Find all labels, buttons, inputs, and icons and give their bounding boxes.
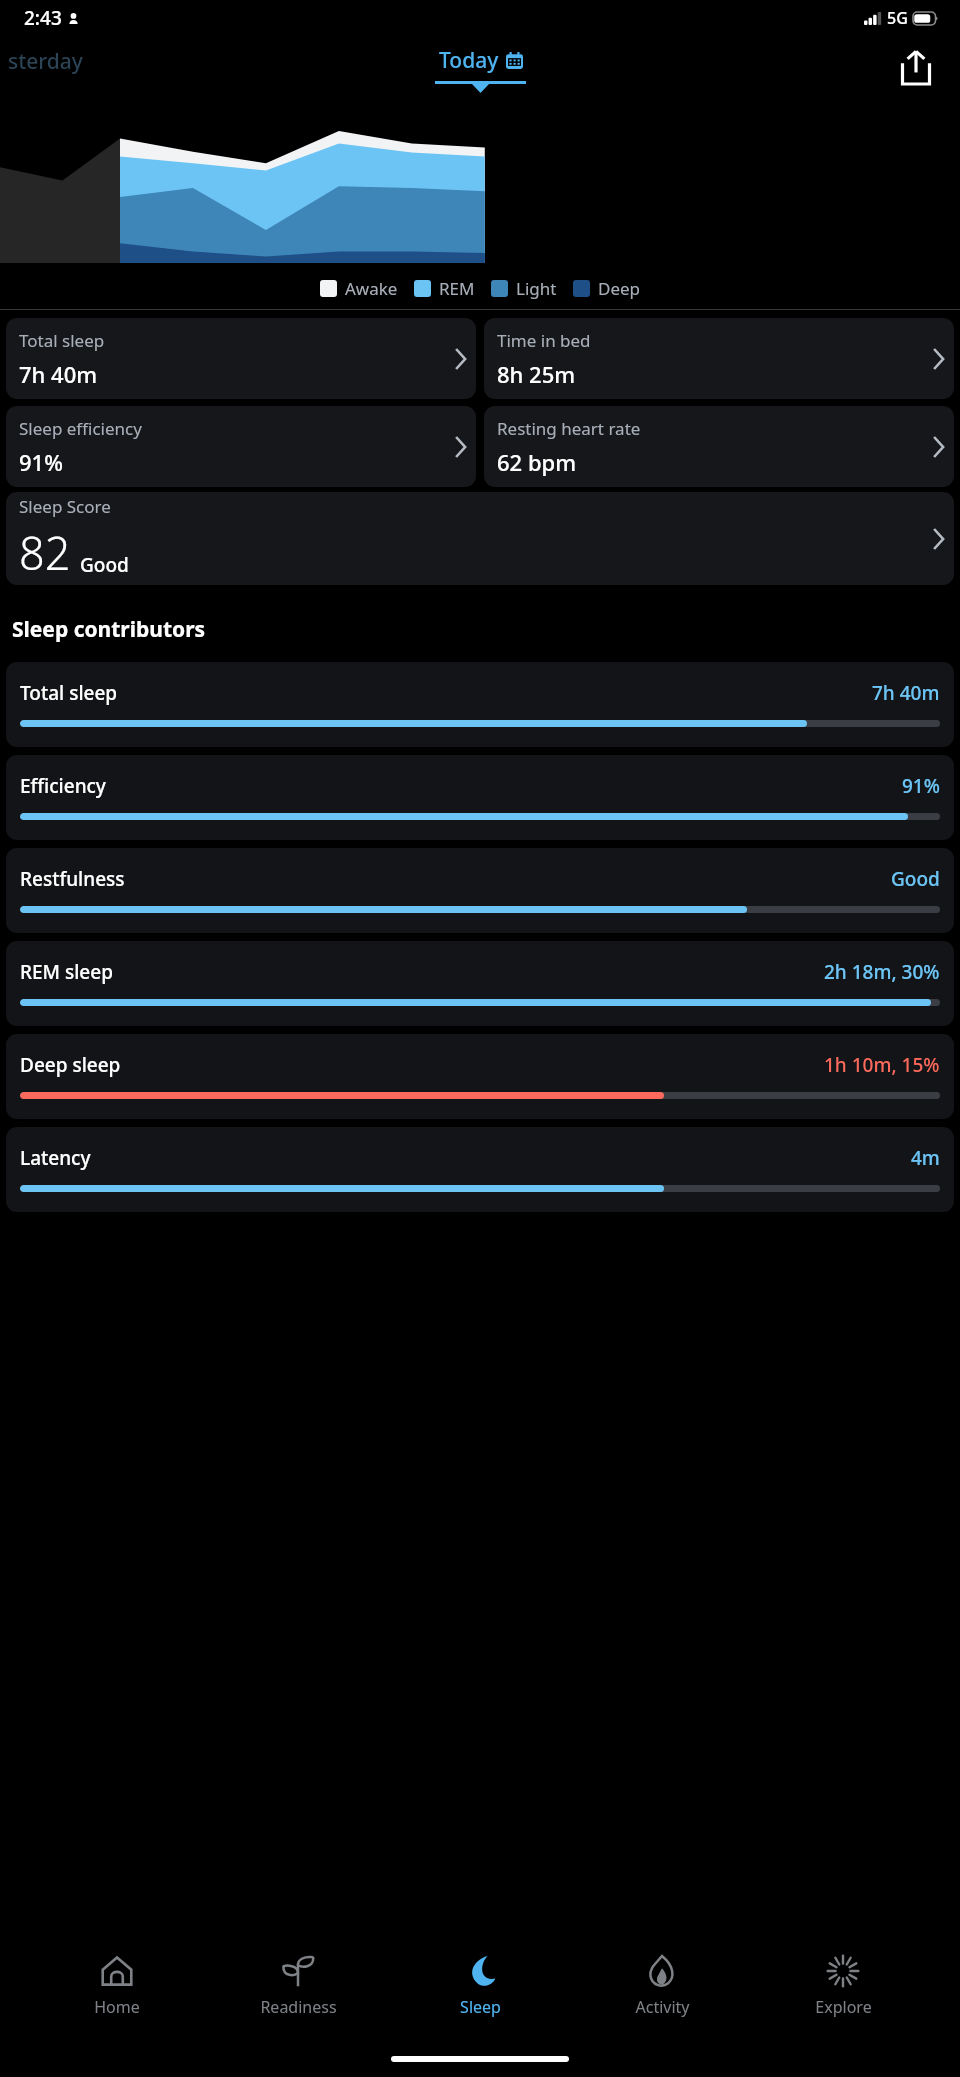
button[interactable]: Restfulness — [6, 848, 954, 933]
staticText: 7h 40m — [872, 680, 940, 706]
staticText: Home — [94, 1996, 140, 2018]
staticText: 5G — [887, 7, 908, 29]
staticText: Sleep — [460, 1996, 501, 2018]
button[interactable]: Home — [52, 1948, 182, 2024]
button[interactable]: sterday — [8, 47, 83, 76]
button[interactable]: Readiness — [233, 1948, 363, 2024]
staticText: 8h 25m — [497, 359, 576, 389]
staticText: Sleep Score — [19, 495, 111, 518]
button[interactable]: Sleep efficiency — [6, 406, 476, 487]
staticText: Resting heart rate — [497, 417, 641, 440]
button[interactable]: Sleep Score — [6, 492, 954, 585]
staticText: 7h 40m — [19, 359, 98, 389]
button[interactable]: Activity — [597, 1948, 727, 2024]
staticText: 1h 10m, 15% — [824, 1052, 940, 1078]
staticText: 4m — [911, 1145, 940, 1171]
staticText: Time in bed — [497, 329, 591, 352]
staticText: Sleep contributors — [12, 615, 206, 644]
button[interactable]: Efficiency — [6, 755, 954, 840]
button[interactable]: Sleep — [415, 1948, 545, 2024]
button[interactable]: Resting heart rate — [484, 406, 954, 487]
staticText: 2h 18m, 30% — [824, 959, 940, 985]
staticText: Total sleep — [20, 680, 118, 706]
staticText: Today — [439, 46, 499, 75]
staticText: Deep sleep — [20, 1052, 121, 1078]
staticText: Restfulness — [20, 866, 125, 892]
staticText: Efficiency — [20, 773, 106, 799]
button[interactable]: Today — [435, 46, 526, 93]
button[interactable]: Time in bed — [484, 318, 954, 399]
button[interactable]: Total sleep — [6, 318, 476, 399]
button[interactable]: Latency — [6, 1127, 954, 1212]
button[interactable]: REM sleep — [6, 941, 954, 1026]
button[interactable]: Total sleep — [6, 662, 954, 747]
staticText: Deep — [598, 277, 641, 300]
staticText: Readiness — [260, 1996, 337, 2018]
staticText: REM — [439, 277, 475, 300]
staticText: 62 bpm — [497, 447, 577, 477]
staticText: Explore — [815, 1996, 872, 2018]
staticText: Good — [891, 866, 940, 892]
staticText: 82 — [19, 522, 71, 583]
staticText: Good — [80, 552, 129, 578]
button[interactable]: Share — [894, 45, 938, 89]
staticText: Sleep efficiency — [19, 417, 142, 440]
staticText: 2:43 — [24, 5, 62, 31]
staticText: 91% — [19, 447, 63, 477]
staticText: Latency — [20, 1145, 91, 1171]
staticText: 91% — [902, 773, 940, 799]
button[interactable]: Deep sleep — [6, 1034, 954, 1119]
staticText: Activity — [635, 1996, 690, 2018]
staticText: Total sleep — [19, 329, 105, 352]
staticText: Light — [516, 277, 557, 300]
button[interactable]: Explore — [778, 1948, 908, 2024]
staticText: Awake — [345, 277, 398, 300]
staticText: REM sleep — [20, 959, 113, 985]
